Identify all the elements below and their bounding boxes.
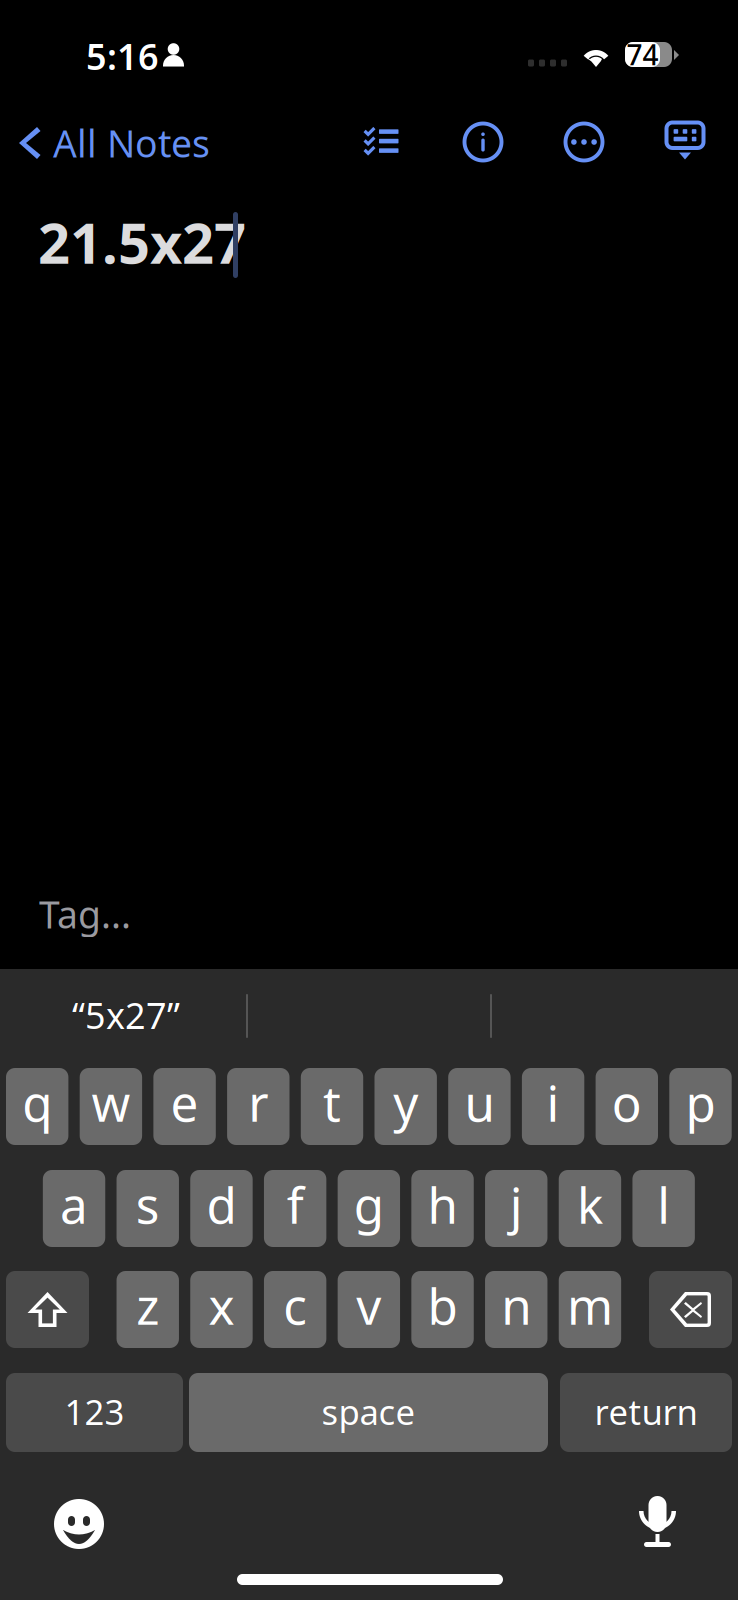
staticText: k [577,1172,603,1237]
button[interactable]: r [227,1068,289,1145]
button[interactable]: p [669,1068,732,1145]
button[interactable]: m [559,1271,621,1348]
staticText: n [501,1273,531,1338]
button[interactable]: All Notes [10,116,220,170]
staticText: j [510,1172,523,1237]
staticText: “5x27” [72,991,180,1039]
button[interactable]: a [43,1170,105,1247]
staticText: c [283,1273,307,1338]
staticText: Tag... [39,889,131,939]
staticText: s [136,1172,160,1237]
button[interactable]: f [264,1170,326,1247]
button[interactable]: i [522,1068,584,1145]
button[interactable]: “5x27” [10,990,242,1040]
staticText: e [171,1070,199,1135]
staticText: 74 [626,36,658,73]
button[interactable]: c [264,1271,326,1348]
staticText: m [567,1273,613,1338]
button[interactable]: Info [454,118,512,166]
button[interactable]: Shift [6,1271,89,1348]
button[interactable]: o [596,1068,658,1145]
staticText: return [594,1388,697,1434]
staticText: 21.5x27 [38,205,246,279]
staticText: All Notes [53,118,210,168]
button[interactable]: Checklist [350,118,412,166]
staticText: i [547,1070,560,1135]
staticText: r [248,1070,268,1135]
button[interactable]: s [116,1170,179,1247]
staticText: t [323,1070,341,1135]
button[interactable]: j [485,1170,547,1247]
staticText: u [464,1070,494,1135]
button[interactable]: q [6,1068,68,1145]
staticText: l [657,1172,670,1237]
button[interactable]: b [411,1271,474,1348]
button[interactable]: Emoji [54,1499,104,1549]
button[interactable]: v [338,1271,400,1348]
button[interactable]: space [189,1373,548,1452]
button[interactable]: u [448,1068,511,1145]
staticText: g [354,1172,384,1237]
staticText: d [206,1172,236,1237]
staticText: y [393,1070,418,1135]
staticText: q [22,1070,52,1135]
staticText: space [321,1388,415,1434]
staticText: b [428,1273,458,1338]
button[interactable]: Delete [649,1271,732,1348]
button[interactable]: y [374,1068,437,1145]
staticText: w [91,1070,130,1135]
button[interactable]: h [411,1170,474,1247]
staticText: o [612,1070,642,1135]
staticText: f [287,1172,304,1237]
button[interactable]: return [560,1373,732,1452]
staticText: h [428,1172,458,1237]
button[interactable]: Hide Keyboard [656,113,714,169]
button[interactable]: Dictate [639,1496,676,1548]
button[interactable]: t [301,1068,363,1145]
staticText: z [136,1273,159,1338]
staticText: v [356,1273,381,1338]
button[interactable]: More [555,118,613,166]
staticText: 123 [64,1388,124,1434]
staticText: p [685,1070,715,1135]
staticText: a [60,1172,88,1237]
button[interactable]: k [559,1170,621,1247]
staticText: x [208,1273,234,1338]
button[interactable]: x [190,1271,253,1348]
button[interactable]: e [153,1068,216,1145]
button[interactable]: 123 [6,1373,183,1452]
button[interactable]: n [485,1271,547,1348]
staticText: 5:16 [86,32,159,80]
button[interactable]: l [632,1170,695,1247]
button[interactable]: g [338,1170,400,1247]
button[interactable]: z [116,1271,179,1348]
button[interactable]: w [80,1068,142,1145]
button[interactable]: d [190,1170,253,1247]
